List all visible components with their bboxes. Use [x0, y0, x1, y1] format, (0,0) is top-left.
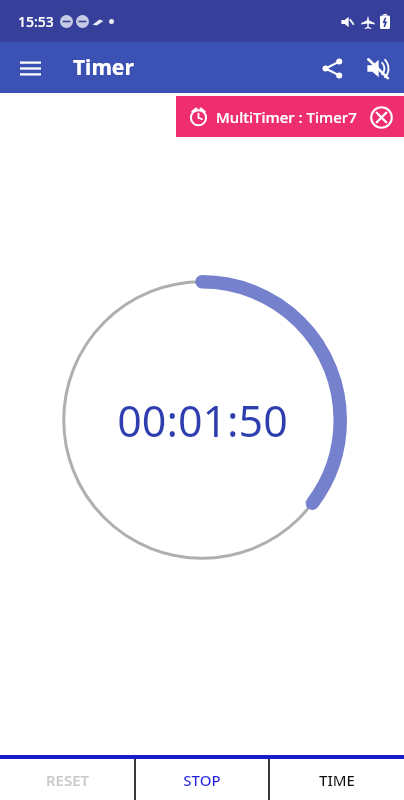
- button[interactable]: Dismiss notification: [366, 102, 396, 132]
- staticText: MultiTimer : Timer7: [216, 107, 357, 127]
- button[interactable]: RESET: [0, 759, 134, 800]
- staticText: Timer: [73, 53, 134, 82]
- button[interactable]: Share: [308, 44, 356, 92]
- staticText: STOP: [183, 770, 221, 790]
- button[interactable]: Open navigation menu: [8, 46, 52, 90]
- button[interactable]: MultiTimer : Timer7: [176, 96, 404, 137]
- staticText: TIME: [319, 770, 355, 790]
- button[interactable]: TIME: [270, 759, 404, 800]
- staticText: 15:53: [18, 12, 54, 31]
- button[interactable]: STOP: [136, 759, 268, 800]
- staticText: 00:01:50: [117, 391, 288, 450]
- staticText: RESET: [46, 770, 89, 790]
- button[interactable]: Mute: [356, 44, 398, 92]
